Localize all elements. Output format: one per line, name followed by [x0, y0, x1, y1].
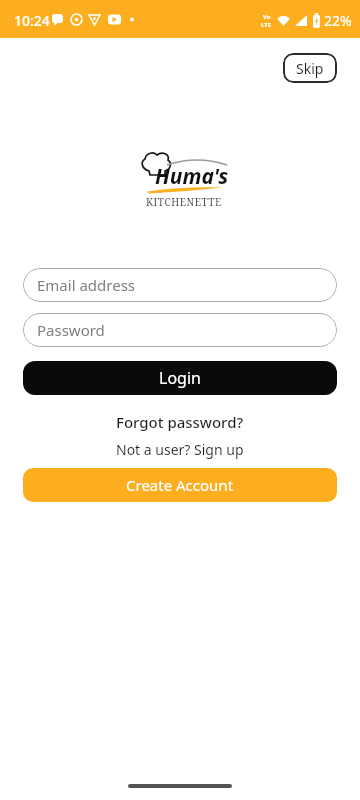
- button[interactable]: Login: [23, 361, 337, 395]
- button[interactable]: Forgot password?: [0, 412, 360, 432]
- staticText: LTE: [261, 21, 272, 29]
- button[interactable]: Email address: [23, 268, 337, 302]
- staticText: Not a user? Sign up: [116, 440, 244, 459]
- staticText: Skip: [296, 59, 324, 78]
- staticText: Password: [37, 320, 105, 340]
- button[interactable]: Create Account: [23, 468, 337, 502]
- staticText: KITCHENETTE: [146, 195, 222, 209]
- staticText: 22%: [324, 11, 352, 30]
- button[interactable]: Not a user? Sign up: [0, 440, 360, 459]
- button[interactable]: Password: [23, 313, 337, 347]
- staticText: Email address: [37, 275, 136, 295]
- staticText: Login: [159, 367, 201, 389]
- staticText: Vo: [263, 13, 271, 21]
- staticText: Create Account: [126, 475, 234, 495]
- staticText: 10:24: [14, 11, 50, 30]
- staticText: Huma's: [155, 162, 229, 191]
- staticText: Forgot password?: [116, 412, 244, 432]
- button[interactable]: Skip: [283, 53, 337, 83]
